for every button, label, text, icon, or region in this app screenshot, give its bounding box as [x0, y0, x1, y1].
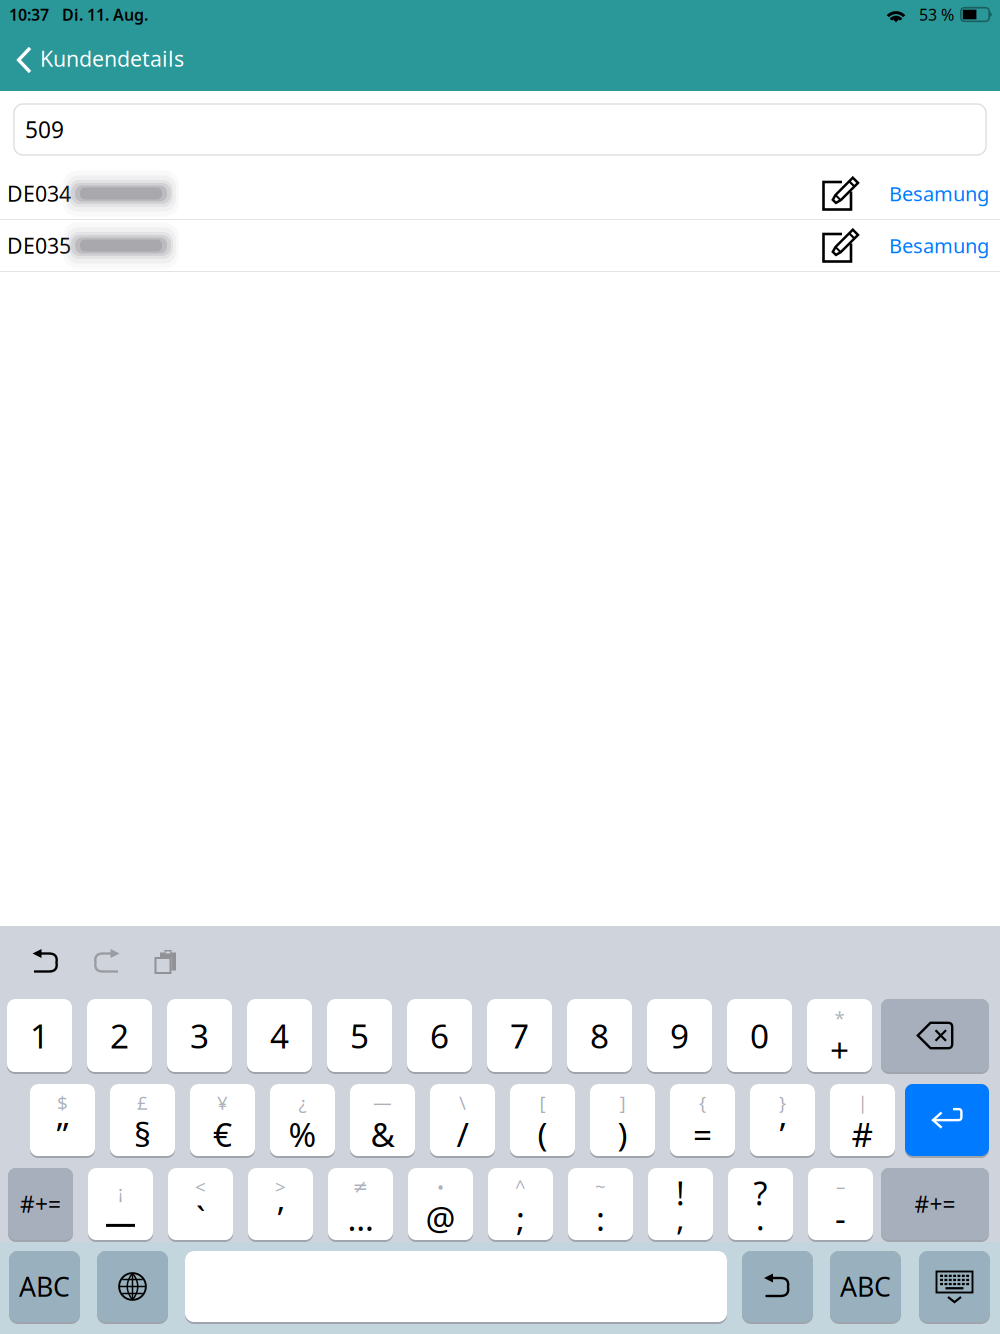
- button[interactable]: —: [350, 1084, 415, 1158]
- button[interactable]: #+=: [8, 1168, 73, 1242]
- staticText: &: [370, 1112, 394, 1156]
- staticText: `: [196, 1196, 205, 1240]
- button[interactable]: 4: [247, 999, 312, 1074]
- button[interactable]: ~: [568, 1168, 633, 1242]
- staticText: {: [699, 1090, 706, 1115]
- button[interactable]: >: [248, 1168, 313, 1242]
- staticText: #+=: [914, 1189, 955, 1219]
- staticText: …: [347, 1196, 373, 1240]
- button[interactable]: 3: [167, 999, 232, 1074]
- button[interactable]: ≠: [328, 1168, 393, 1242]
- staticText: —: [373, 1090, 392, 1115]
- button[interactable]: £: [110, 1084, 175, 1158]
- button[interactable]: [742, 1251, 813, 1324]
- staticText: ”: [56, 1112, 68, 1156]
- staticText: <: [195, 1174, 206, 1199]
- staticText: ABC: [19, 1269, 70, 1304]
- button[interactable]: [97, 1251, 168, 1324]
- button[interactable]: ¡: [88, 1168, 153, 1242]
- staticText: 509: [25, 114, 64, 144]
- staticText: Besamung: [889, 232, 989, 259]
- button[interactable]: <: [168, 1168, 233, 1242]
- staticText: >: [275, 1174, 286, 1199]
- staticText: £: [137, 1090, 148, 1115]
- button[interactable]: ¿: [270, 1084, 335, 1158]
- staticText: 4: [270, 1013, 289, 1058]
- button[interactable]: ]: [590, 1084, 655, 1158]
- staticText: 2: [110, 1013, 129, 1058]
- button[interactable]: #+=: [881, 1168, 989, 1242]
- staticText: }: [779, 1090, 786, 1115]
- button[interactable]: {: [670, 1084, 735, 1158]
- staticText: !: [676, 1172, 685, 1214]
- staticText: |: [857, 1090, 867, 1115]
- staticText: ¡: [118, 1179, 123, 1204]
- staticText: -: [835, 1196, 846, 1240]
- button[interactable]: 0: [727, 999, 792, 1074]
- button[interactable]: [185, 1251, 727, 1324]
- staticText: ]: [619, 1090, 625, 1115]
- staticText: Di. 11. Aug.: [62, 4, 148, 25]
- button[interactable]: ^: [488, 1168, 553, 1242]
- staticText: ≠: [352, 1176, 368, 1197]
- button[interactable]: ¥: [190, 1084, 255, 1158]
- staticText: ,: [676, 1197, 685, 1239]
- staticText: \: [459, 1090, 466, 1115]
- staticText: *: [834, 1006, 844, 1030]
- staticText: @: [425, 1196, 455, 1240]
- button[interactable]: DE035: [0, 220, 1000, 272]
- button[interactable]: 1: [7, 999, 72, 1074]
- button[interactable]: 6: [407, 999, 472, 1074]
- button[interactable]: [: [510, 1084, 575, 1158]
- staticText: #: [851, 1112, 873, 1156]
- button[interactable]: !: [648, 1168, 713, 1242]
- button[interactable]: •: [408, 1168, 473, 1242]
- staticText: ^: [515, 1174, 526, 1199]
- staticText: [: [539, 1090, 545, 1115]
- button[interactable]: ?: [728, 1168, 793, 1242]
- staticText: ’: [277, 1196, 283, 1240]
- staticText: .: [756, 1197, 765, 1239]
- staticText: #+=: [20, 1189, 61, 1219]
- staticText: ABC: [840, 1269, 891, 1304]
- button[interactable]: ABC: [9, 1251, 80, 1324]
- staticText: ~: [595, 1174, 606, 1199]
- staticText: %: [288, 1112, 316, 1156]
- button[interactable]: –: [808, 1168, 873, 1242]
- button[interactable]: Redo: [80, 939, 132, 985]
- staticText: ;: [516, 1196, 525, 1240]
- button[interactable]: [919, 1251, 990, 1324]
- button[interactable]: 5: [327, 999, 392, 1074]
- button[interactable]: Undo: [20, 939, 72, 985]
- staticText: 8: [590, 1013, 609, 1058]
- staticText: +: [830, 1027, 849, 1072]
- button[interactable]: $: [30, 1084, 95, 1158]
- staticText: (: [537, 1112, 547, 1156]
- button[interactable]: 7: [487, 999, 552, 1074]
- button[interactable]: 8: [567, 999, 632, 1074]
- button[interactable]: DE034: [0, 168, 1000, 220]
- button[interactable]: |: [830, 1084, 895, 1158]
- button[interactable]: *: [807, 999, 872, 1074]
- staticText: 7: [510, 1013, 529, 1058]
- staticText: ): [617, 1112, 627, 1156]
- staticText: ?: [753, 1172, 767, 1214]
- staticText: –: [836, 1174, 845, 1199]
- staticText: 6: [430, 1013, 449, 1058]
- staticText: €: [213, 1112, 232, 1156]
- staticText: Kundendetails: [40, 44, 184, 73]
- button[interactable]: 9: [647, 999, 712, 1074]
- staticText: =: [693, 1112, 712, 1156]
- button[interactable]: Kundendetails: [0, 30, 202, 90]
- button[interactable]: [905, 1084, 989, 1158]
- staticText: Besamung: [889, 180, 989, 207]
- staticText: ¥: [217, 1090, 228, 1115]
- button[interactable]: [881, 999, 989, 1074]
- button[interactable]: \: [430, 1084, 495, 1158]
- staticText: •: [437, 1174, 444, 1199]
- staticText: 3: [190, 1013, 209, 1058]
- button[interactable]: 2: [87, 999, 152, 1074]
- button[interactable]: Paste: [140, 939, 192, 985]
- button[interactable]: ABC: [830, 1251, 901, 1324]
- button[interactable]: }: [750, 1084, 815, 1158]
